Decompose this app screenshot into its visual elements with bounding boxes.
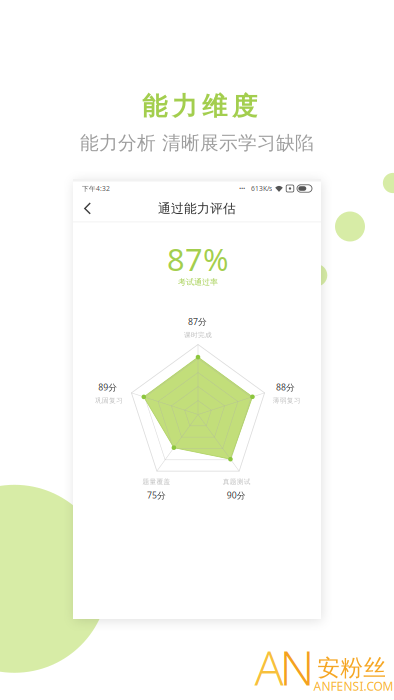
staticText: 89分 xyxy=(98,381,117,393)
staticText: 下午4:32 xyxy=(82,184,110,193)
staticText: A xyxy=(254,634,283,700)
staticText: 90分 xyxy=(227,489,246,501)
staticText: ••• xyxy=(239,184,245,193)
staticText: 真题测试 xyxy=(223,477,251,486)
staticText: N xyxy=(279,634,314,700)
staticText: 安粉丝 xyxy=(317,654,386,682)
staticText: 75分 xyxy=(147,489,166,501)
staticText: 能力分析 清晰展示学习缺陷 xyxy=(80,131,314,155)
staticText: 题量覆盖 xyxy=(142,477,170,486)
staticText: 通过能力评估 xyxy=(158,200,236,216)
staticText: 薄弱复习 xyxy=(273,396,301,405)
staticText: 考试通过率 xyxy=(178,277,218,287)
button[interactable]: Back xyxy=(76,196,98,220)
staticText: ANFENSI.COM xyxy=(314,678,394,694)
staticText: 能力维度 xyxy=(142,90,257,122)
staticText: 88分 xyxy=(276,381,295,393)
staticText: 87分 xyxy=(188,316,207,327)
staticText: 613K/s xyxy=(251,184,272,193)
staticText: 87% xyxy=(167,238,229,280)
staticText: 巩固复习 xyxy=(95,396,123,405)
staticText: 课时完成 xyxy=(184,331,212,339)
